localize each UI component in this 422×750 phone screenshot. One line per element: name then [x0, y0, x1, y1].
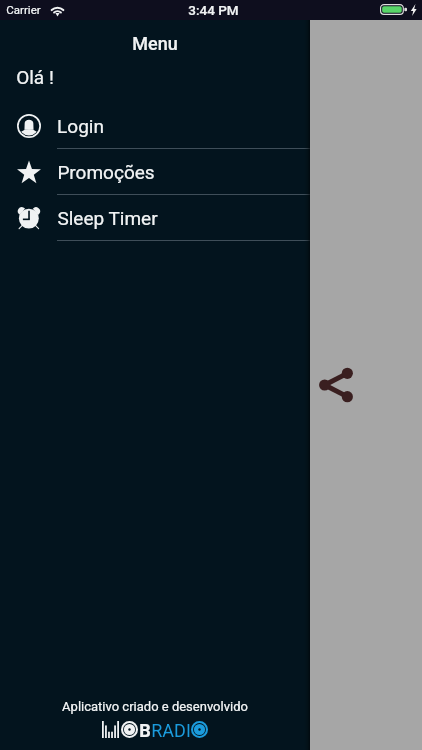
staticText: Promoções — [57, 161, 155, 183]
staticText: 3:44 PM — [188, 2, 239, 18]
staticText: Menu — [132, 33, 178, 51]
staticText: Sleep Timer — [57, 207, 158, 229]
button[interactable]: Login — [0, 103, 310, 149]
staticText: Olá ! — [16, 66, 54, 88]
staticText: Aplicativo criado e desenvolvido — [62, 699, 248, 714]
staticText: B — [139, 720, 151, 739]
button[interactable]: Sleep Timer — [0, 195, 310, 241]
staticText: RADI — [151, 720, 191, 739]
staticText: Login — [57, 115, 104, 137]
button[interactable]: Promoções — [0, 149, 310, 195]
staticText: Carrier — [6, 3, 41, 16]
button[interactable]: Share — [318, 367, 354, 403]
